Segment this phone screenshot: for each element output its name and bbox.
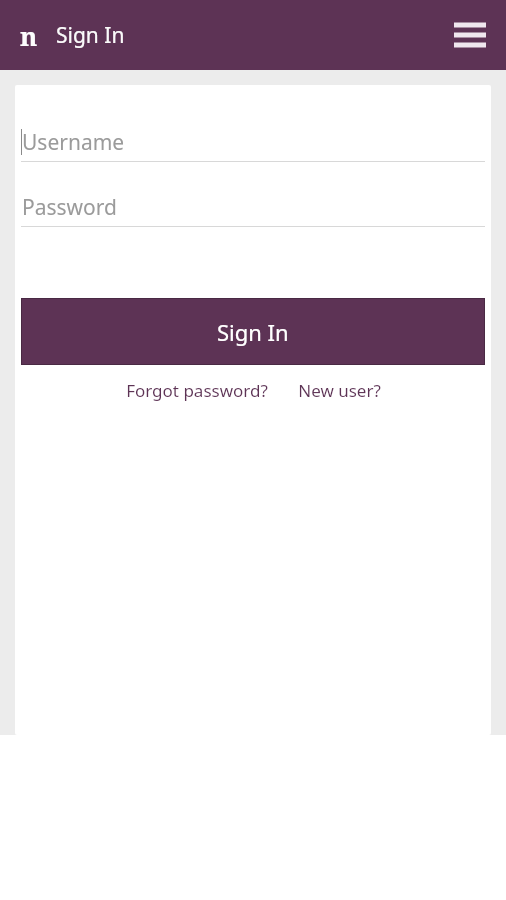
staticText: Sign In (217, 317, 289, 347)
staticText: Password (22, 193, 117, 222)
staticText: Sign In (56, 21, 125, 50)
button[interactable]: Sign In (21, 298, 485, 365)
staticText: Username (22, 128, 125, 157)
staticText: n (20, 18, 38, 53)
staticText: Forgot password? (126, 379, 268, 402)
button[interactable]: Open navigation menu (446, 11, 494, 59)
button[interactable]: New user? (294, 376, 385, 405)
button[interactable]: Password (21, 188, 485, 227)
button[interactable]: Forgot password? (122, 376, 272, 405)
staticText: New user? (298, 379, 381, 402)
button[interactable]: Username (21, 123, 485, 162)
